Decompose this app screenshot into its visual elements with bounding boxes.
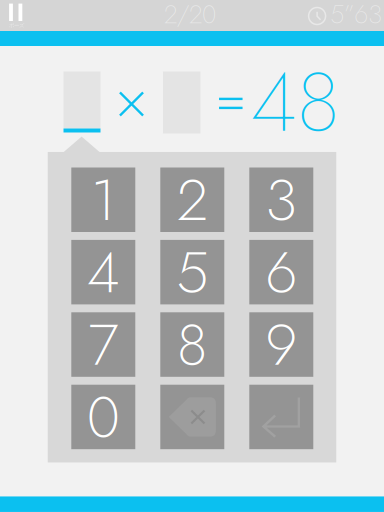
- button[interactable]: Enter: [249, 385, 313, 449]
- button[interactable]: 1: [71, 167, 135, 232]
- button[interactable]: Delete: [160, 385, 224, 449]
- staticText: 7: [88, 303, 118, 386]
- button[interactable]: 3: [249, 167, 313, 232]
- button[interactable]: 8: [160, 312, 224, 377]
- staticText: 5”63: [330, 0, 382, 33]
- button[interactable]: 7: [71, 312, 135, 377]
- staticText: ポーズ: [9, 22, 24, 29]
- staticText: 48: [250, 42, 339, 162]
- staticText: 0: [87, 375, 120, 459]
- staticText: 8: [177, 303, 208, 386]
- staticText: 6: [265, 230, 297, 314]
- staticText: 1: [91, 158, 116, 242]
- button[interactable]: 0: [71, 385, 135, 449]
- staticText: 9: [265, 303, 297, 386]
- button[interactable]: 6: [249, 240, 313, 304]
- button[interactable]: 9: [249, 312, 313, 377]
- button[interactable]: Pause: [0, 0, 32, 31]
- staticText: 5: [176, 230, 208, 314]
- button[interactable]: 4: [71, 240, 135, 304]
- staticText: 2: [177, 158, 208, 242]
- button[interactable]: 2: [160, 167, 224, 232]
- button[interactable]: 5: [160, 240, 224, 304]
- staticText: 2/20: [164, 0, 216, 33]
- staticText: 3: [265, 158, 297, 242]
- staticText: 4: [87, 230, 120, 314]
